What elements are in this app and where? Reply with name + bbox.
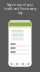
button[interactable]: Profile bbox=[26, 61, 32, 66]
staticText: health and fitness every bbox=[4, 7, 36, 11]
button[interactable] bbox=[8, 29, 31, 32]
staticText: Stay on top of your bbox=[7, 3, 33, 7]
button[interactable]: Browse bbox=[20, 61, 26, 66]
button[interactable] bbox=[8, 50, 31, 54]
button[interactable]: Sharing bbox=[14, 61, 20, 66]
button[interactable]: Summary bbox=[8, 61, 14, 66]
button[interactable] bbox=[8, 42, 31, 46]
button[interactable] bbox=[8, 33, 31, 36]
button[interactable] bbox=[8, 37, 31, 40]
staticText: day bbox=[18, 11, 22, 15]
button[interactable] bbox=[8, 46, 31, 50]
